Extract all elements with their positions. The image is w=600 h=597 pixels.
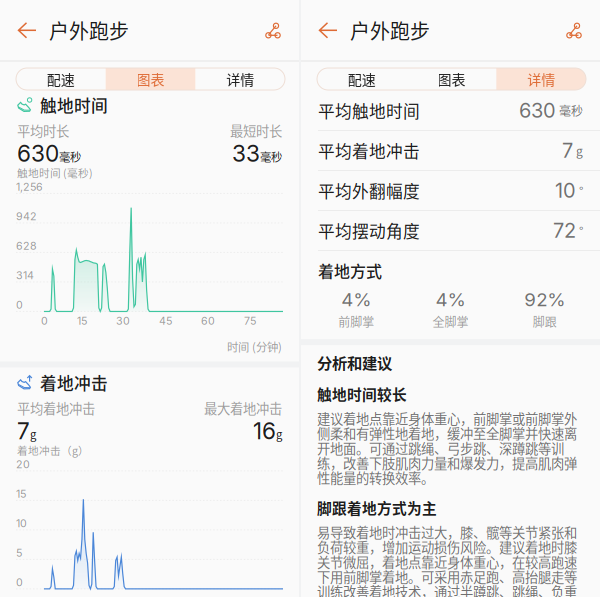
staticText: 平均着地冲击	[17, 398, 95, 418]
staticText: 毫秒	[559, 102, 583, 119]
staticText: 平均触地时间	[318, 98, 420, 122]
staticText: 脚跟着地方式为主	[317, 497, 437, 518]
button[interactable]: 配速	[317, 68, 407, 90]
staticText: 平均着地冲击	[318, 138, 420, 162]
staticText: 前脚掌	[338, 313, 374, 330]
staticText: 0	[41, 314, 48, 327]
staticText: 配速	[47, 69, 75, 89]
staticText: 15	[77, 314, 87, 327]
button[interactable]: 图表	[106, 68, 195, 90]
staticText: 60	[201, 314, 215, 327]
staticText: 92%	[524, 288, 565, 311]
staticText: 着地方式	[318, 259, 382, 282]
button[interactable]: 图表	[407, 68, 496, 90]
staticText: 详情	[527, 69, 555, 89]
button[interactable]: 平均着地冲击	[301, 131, 600, 171]
staticText: 分析和建议	[317, 351, 392, 373]
staticText: 7	[17, 417, 30, 445]
staticText: 0	[16, 298, 23, 311]
staticText: 触地时间	[40, 93, 108, 117]
button[interactable]: Back	[0, 0, 49, 60]
staticText: 7	[562, 138, 573, 163]
staticText: 15	[16, 487, 26, 500]
staticText: 最短时长	[230, 121, 282, 140]
staticText: 5	[16, 546, 22, 559]
staticText: 75	[244, 314, 256, 327]
staticText: 配速	[348, 69, 376, 89]
staticText: 314	[16, 269, 34, 282]
staticText: 0	[16, 576, 23, 589]
staticText: 时间 (分钟)	[227, 338, 282, 355]
button[interactable]: Share	[553, 0, 600, 60]
staticText: °	[579, 182, 583, 199]
staticText: 触地时间 (毫秒)	[17, 165, 93, 180]
staticText: 942	[16, 210, 37, 223]
staticText: 平均摆动角度	[318, 218, 420, 242]
staticText: g	[30, 426, 36, 442]
staticText: 触地时间较长	[317, 383, 407, 404]
staticText: 全脚掌	[432, 313, 468, 330]
button[interactable]: 平均触地时间	[301, 91, 600, 131]
button[interactable]: 详情	[195, 68, 285, 90]
staticText: 4%	[341, 288, 371, 311]
button[interactable]: 户外跑步	[49, 0, 129, 60]
staticText: °	[579, 222, 583, 239]
button[interactable]: 平均外翻幅度	[301, 171, 600, 211]
staticText: 30	[116, 314, 130, 327]
staticText: 毫秒	[59, 148, 81, 165]
staticText: 1,256	[16, 180, 43, 193]
staticText: 72	[553, 218, 576, 243]
button[interactable]: 平均摆动角度	[301, 211, 600, 251]
staticText: 户外跑步	[350, 16, 430, 45]
staticText: 图表	[437, 69, 465, 89]
staticText: 建议着地点靠近身体重心，前脚掌或前脚掌外侧柔和有弹性地着地，缓冲至全脚掌并快速离…	[317, 409, 577, 487]
staticText: 毫秒	[260, 148, 282, 165]
button[interactable]: 户外跑步	[350, 0, 430, 60]
staticText: 4%	[435, 288, 465, 311]
staticText: 平均时长	[17, 121, 69, 140]
button[interactable]: 详情	[496, 68, 586, 90]
staticText: 易导致着地时冲击过大，膝、髋等关节紧张和负荷较重，增加运动损伤风险。建议着地时膝…	[317, 522, 577, 597]
staticText: 最大着地冲击	[204, 398, 282, 418]
button[interactable]: Back	[301, 0, 350, 60]
staticText: 着地冲击	[40, 370, 108, 394]
staticText: 详情	[226, 69, 254, 89]
staticText: 脚跟	[533, 313, 557, 330]
staticText: 33	[232, 140, 260, 167]
staticText: 628	[16, 239, 37, 252]
staticText: 630	[17, 140, 59, 167]
staticText: g	[276, 426, 282, 442]
staticText: 图表	[136, 69, 164, 89]
staticText: 平均外翻幅度	[318, 178, 420, 202]
staticText: 着地冲击（g）	[17, 442, 89, 458]
button[interactable]: 配速	[16, 68, 106, 90]
staticText: 10	[555, 178, 576, 203]
button[interactable]: Share	[252, 0, 299, 60]
staticText: 10	[16, 517, 27, 530]
staticText: g	[576, 142, 583, 159]
staticText: 16	[253, 417, 276, 445]
staticText: 630	[519, 98, 556, 123]
staticText: 20	[16, 458, 30, 471]
staticText: 45	[159, 314, 172, 327]
staticText: 户外跑步	[49, 16, 129, 45]
